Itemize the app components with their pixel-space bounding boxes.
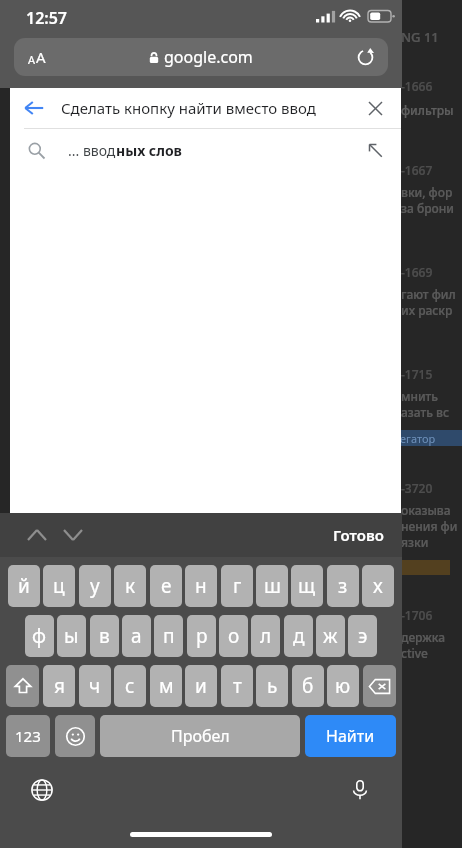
staticText: з bbox=[338, 573, 348, 599]
button[interactable]: й bbox=[8, 565, 40, 607]
button[interactable]: ц bbox=[43, 565, 75, 607]
staticText: оказыва bbox=[401, 502, 451, 518]
staticText: в bbox=[99, 623, 110, 649]
button[interactable]: щ bbox=[291, 565, 323, 607]
staticText: 123 bbox=[15, 726, 41, 746]
button[interactable]: х bbox=[362, 565, 394, 607]
staticText: ф bbox=[32, 623, 47, 649]
button[interactable]: я bbox=[43, 665, 75, 707]
button[interactable]: Готово bbox=[325, 517, 392, 553]
button[interactable]: Use suggestion bbox=[360, 135, 390, 165]
staticText: д bbox=[293, 623, 305, 649]
button[interactable]: ы bbox=[57, 615, 86, 657]
staticText: язки bbox=[401, 534, 429, 550]
button[interactable]: A bbox=[14, 38, 388, 76]
staticText: -3720 bbox=[401, 480, 433, 496]
button[interactable]: Dictation bbox=[340, 770, 380, 810]
staticText: ч bbox=[89, 673, 101, 699]
staticText: -1706 bbox=[401, 607, 433, 623]
staticText: их раскр bbox=[401, 302, 453, 318]
staticText: х bbox=[373, 573, 383, 599]
button[interactable]: у bbox=[79, 565, 111, 607]
staticText: за брони bbox=[401, 200, 454, 216]
button[interactable]: Back bbox=[19, 93, 49, 123]
staticText: 12:57 bbox=[26, 7, 68, 29]
staticText: ных слов bbox=[116, 141, 182, 160]
staticText: о bbox=[228, 623, 240, 649]
staticText: ctive bbox=[401, 645, 428, 661]
button[interactable]: э bbox=[348, 615, 377, 657]
button[interactable]: Найти bbox=[305, 715, 396, 757]
button[interactable]: д bbox=[284, 615, 313, 657]
staticText: т bbox=[233, 673, 242, 699]
staticText: ц bbox=[53, 573, 65, 599]
button[interactable]: п bbox=[154, 615, 183, 657]
staticText: нения фи bbox=[401, 518, 458, 534]
button[interactable]: б bbox=[292, 665, 324, 707]
button[interactable]: ф bbox=[25, 615, 54, 657]
staticText: вки, фор bbox=[401, 184, 453, 200]
button[interactable]: ... ввод bbox=[10, 129, 401, 171]
staticText: -1715 bbox=[401, 366, 433, 382]
button[interactable]: ч bbox=[79, 665, 111, 707]
staticText: ю bbox=[335, 673, 351, 699]
staticText: к bbox=[125, 573, 136, 599]
staticText: гают фил bbox=[401, 286, 456, 302]
staticText: м bbox=[159, 673, 174, 699]
button[interactable]: Next field bbox=[56, 513, 90, 557]
button[interactable]: н bbox=[185, 565, 217, 607]
staticText: п bbox=[163, 623, 175, 649]
button[interactable]: с bbox=[114, 665, 146, 707]
staticText: с bbox=[125, 673, 135, 699]
staticText: Сделать кнопку найти вместо ввод bbox=[61, 98, 316, 118]
button[interactable]: Shift bbox=[6, 665, 39, 707]
button[interactable]: о bbox=[219, 615, 248, 657]
button[interactable]: т bbox=[221, 665, 253, 707]
staticText: Готово bbox=[333, 525, 384, 545]
staticText: Пробел bbox=[171, 725, 230, 747]
button[interactable]: Reload bbox=[350, 42, 380, 72]
button[interactable]: з bbox=[327, 565, 359, 607]
staticText: р bbox=[196, 623, 208, 649]
button[interactable]: Пробел bbox=[100, 715, 300, 757]
button[interactable]: Back bbox=[10, 88, 401, 128]
staticText: азать вс bbox=[401, 404, 449, 420]
staticText: мнить bbox=[401, 388, 439, 404]
button[interactable]: Backspace bbox=[363, 665, 396, 707]
button[interactable]: ш bbox=[256, 565, 288, 607]
button[interactable]: ь bbox=[256, 665, 288, 707]
button[interactable]: ю bbox=[327, 665, 359, 707]
button[interactable]: Clear bbox=[360, 93, 390, 123]
staticText: н bbox=[195, 573, 207, 599]
button[interactable]: 123 bbox=[6, 715, 50, 757]
button[interactable]: Change keyboard bbox=[22, 770, 62, 810]
staticText: егатор bbox=[400, 431, 436, 446]
button[interactable]: м bbox=[150, 665, 182, 707]
staticText: google.com bbox=[164, 46, 253, 68]
button[interactable]: ж bbox=[316, 615, 345, 657]
staticText: и bbox=[195, 673, 207, 699]
staticText: б bbox=[302, 673, 314, 699]
staticText: а bbox=[131, 623, 142, 649]
button[interactable]: к bbox=[114, 565, 146, 607]
staticText: NG 11 bbox=[401, 28, 439, 46]
button[interactable]: л bbox=[251, 615, 280, 657]
button[interactable]: р bbox=[187, 615, 216, 657]
button[interactable]: г bbox=[221, 565, 253, 607]
staticText: ы bbox=[64, 623, 79, 649]
button[interactable]: а bbox=[122, 615, 151, 657]
staticText: ь bbox=[267, 673, 278, 699]
staticText: э bbox=[358, 623, 368, 649]
staticText: ... ввод bbox=[68, 141, 116, 160]
button[interactable]: Previous field bbox=[20, 513, 54, 557]
staticText: A bbox=[36, 47, 46, 67]
button[interactable]: е bbox=[150, 565, 182, 607]
staticText: держка bbox=[401, 629, 446, 645]
staticText: щ bbox=[298, 573, 316, 599]
staticText: й bbox=[18, 573, 30, 599]
button[interactable]: и bbox=[185, 665, 217, 707]
button[interactable]: в bbox=[90, 615, 119, 657]
staticText: фильтры bbox=[401, 102, 454, 118]
staticText: -1667 bbox=[401, 162, 433, 178]
button[interactable]: Emoji bbox=[55, 715, 95, 757]
